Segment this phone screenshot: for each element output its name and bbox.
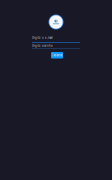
staticText: Digite a senha (32, 44, 52, 47)
button[interactable]: Cadastrar (51, 52, 63, 58)
staticText: Digite o e-mail (32, 36, 53, 39)
staticText: Cadastrar (51, 53, 62, 57)
